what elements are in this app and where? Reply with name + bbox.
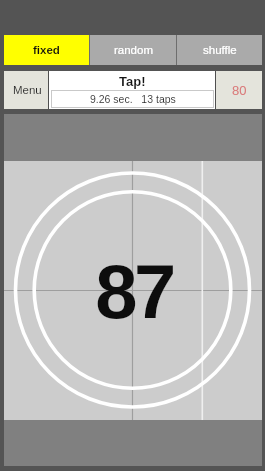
staticText: random bbox=[114, 44, 153, 57]
staticText: 87 bbox=[95, 249, 173, 334]
staticText: 9.26 sec. 13 taps bbox=[90, 93, 176, 105]
staticText: Menu bbox=[13, 84, 42, 97]
button[interactable]: Tap! bbox=[49, 71, 215, 109]
staticText: shuffle bbox=[203, 44, 237, 57]
button[interactable]: shuffle bbox=[177, 35, 262, 65]
button[interactable]: 80 bbox=[216, 71, 262, 109]
staticText: Tap! bbox=[119, 74, 146, 89]
staticText: fixed bbox=[33, 44, 60, 57]
button[interactable]: Menu bbox=[4, 71, 48, 109]
button[interactable]: random bbox=[90, 35, 176, 65]
button[interactable]: fixed bbox=[4, 35, 89, 65]
button[interactable]: 87 bbox=[4, 161, 262, 420]
staticText: 80 bbox=[232, 83, 247, 98]
